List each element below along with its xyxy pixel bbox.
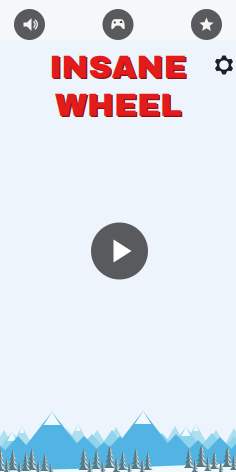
- staticText: WHEEL: [56, 89, 182, 124]
- button[interactable]: Games: [102, 9, 133, 40]
- staticText: WHEEL: [55, 88, 181, 122]
- button[interactable]: Play: [91, 222, 148, 279]
- button[interactable]: Settings: [213, 54, 235, 76]
- staticText: INSANE: [51, 51, 188, 86]
- button[interactable]: Sound: [14, 9, 45, 40]
- staticText: INSANE: [49, 50, 186, 84]
- button[interactable]: Rate: [191, 9, 222, 40]
